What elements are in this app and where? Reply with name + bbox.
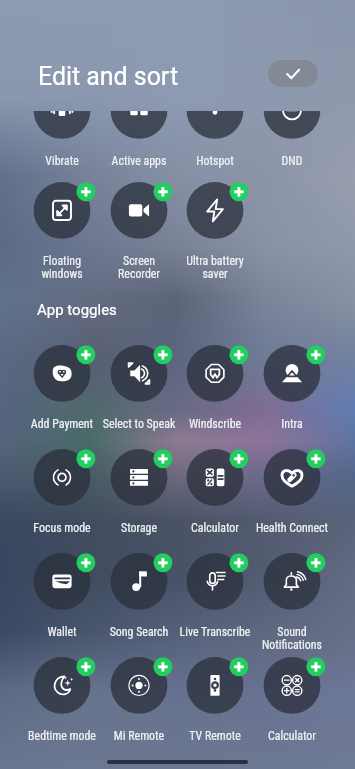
button[interactable]: Mi Remote <box>97 653 181 748</box>
staticText: Calculator <box>250 729 334 743</box>
button[interactable]: Focus mode <box>20 445 104 540</box>
button[interactable]: Live Transcribe <box>173 549 257 644</box>
button[interactable]: Song Search <box>97 549 181 644</box>
button[interactable]: Sound Notifications <box>250 549 334 644</box>
staticText: Intra <box>250 417 334 431</box>
staticText: Health Connect <box>250 521 334 535</box>
staticText: Live Transcribe <box>173 625 257 639</box>
button[interactable]: TV Remote <box>173 653 257 748</box>
staticText: Select to Speak <box>97 417 181 431</box>
staticText: Add Payment <box>20 417 104 431</box>
staticText: Edit and sort <box>38 62 179 91</box>
staticText: TV Remote <box>173 729 257 743</box>
button[interactable]: Floating windows <box>20 178 104 273</box>
button[interactable]: Hotspot <box>173 111 257 173</box>
button[interactable]: Calculator <box>173 445 257 540</box>
staticText: Windscribe <box>173 417 257 431</box>
staticText: Calculator <box>173 521 257 535</box>
button[interactable]: Done <box>268 60 318 87</box>
button[interactable]: Bedtime mode <box>20 653 104 748</box>
button[interactable]: Select to Speak <box>97 341 181 436</box>
staticText: Storage <box>97 521 181 535</box>
staticText: Sound Notifications <box>250 625 334 652</box>
staticText: Vibrate <box>20 154 104 168</box>
button[interactable]: Storage <box>97 445 181 540</box>
staticText: Mi Remote <box>97 729 181 743</box>
staticText: Focus mode <box>20 521 104 535</box>
button[interactable]: DND <box>250 111 334 173</box>
staticText: Ultra battery saver <box>173 254 257 281</box>
staticText: Bedtime mode <box>20 729 104 743</box>
staticText: DND <box>250 154 334 168</box>
button[interactable]: Active apps <box>97 111 181 173</box>
staticText: Song Search <box>97 625 181 639</box>
button[interactable]: Wallet <box>20 549 104 644</box>
staticText: Wallet <box>20 625 104 639</box>
button[interactable]: Ultra battery saver <box>173 178 257 273</box>
button[interactable]: Calculator <box>250 653 334 748</box>
button[interactable]: Intra <box>250 341 334 436</box>
button[interactable]: Add Payment <box>20 341 104 436</box>
staticText: Screen Recorder <box>97 254 181 281</box>
button[interactable]: Health Connect <box>250 445 334 540</box>
staticText: Floating windows <box>20 254 104 281</box>
staticText: Active apps <box>97 154 181 168</box>
button[interactable]: Windscribe <box>173 341 257 436</box>
button[interactable]: Vibrate <box>20 111 104 173</box>
button[interactable]: Screen Recorder <box>97 178 181 273</box>
staticText: Hotspot <box>173 154 257 168</box>
staticText: App toggles <box>37 301 117 319</box>
